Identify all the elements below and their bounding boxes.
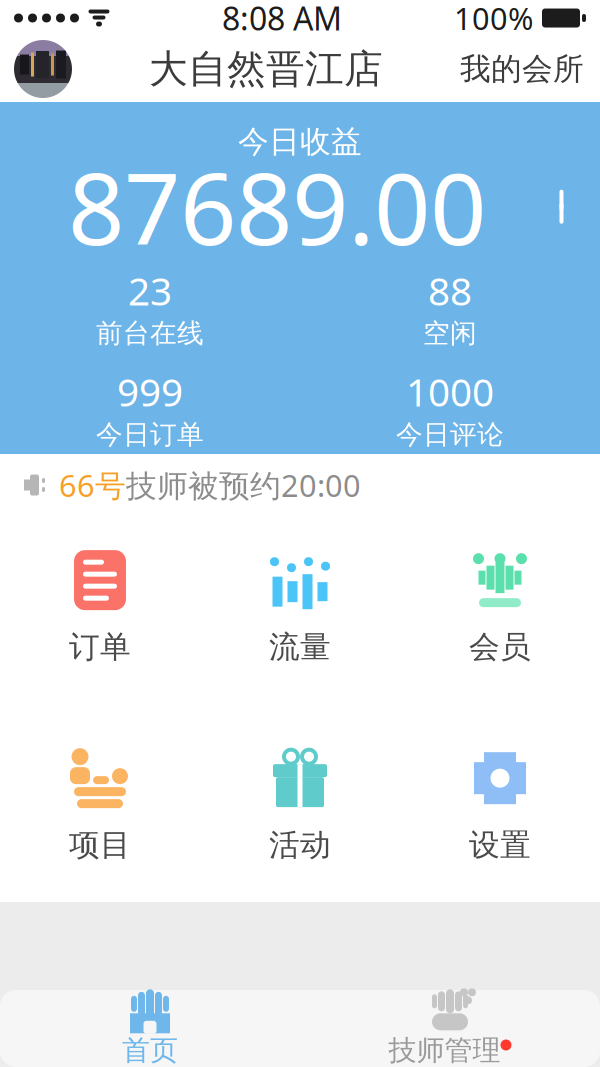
staticText: 空闲 xyxy=(423,317,477,350)
staticText: 大自然晋江店 xyxy=(149,45,383,93)
staticText: 999 xyxy=(117,366,183,417)
staticText: 88 xyxy=(428,265,472,316)
button[interactable]: 首页 xyxy=(0,990,300,1067)
button[interactable]: Today revenue detail xyxy=(0,161,600,253)
staticText: 流量 xyxy=(269,628,331,666)
button[interactable]: 活动 xyxy=(200,734,400,874)
button[interactable]: Store profile xyxy=(0,36,72,102)
staticText: 23 xyxy=(128,265,172,316)
staticText: 首页 xyxy=(122,1033,178,1067)
staticText: 订单 xyxy=(69,628,131,666)
staticText: 8:08 AM xyxy=(222,0,342,39)
staticText: 今日收益 xyxy=(238,123,362,161)
staticText: 66号 xyxy=(59,465,126,505)
button[interactable]: 订单 xyxy=(0,536,200,676)
staticText: 100% xyxy=(454,0,533,38)
staticText: 技师管理 xyxy=(388,1033,500,1067)
staticText: 活动 xyxy=(269,826,331,864)
staticText: 设置 xyxy=(469,826,531,864)
staticText: 87689.00 xyxy=(68,141,486,272)
staticText: 前台在线 xyxy=(96,317,204,350)
button[interactable]: 项目 xyxy=(0,734,200,874)
button[interactable]: 流量 xyxy=(200,536,400,676)
button[interactable]: 技师管理 xyxy=(300,990,600,1067)
button[interactable]: 会员 xyxy=(400,536,600,676)
staticText: 我的会所 xyxy=(460,50,584,88)
staticText: 1000 xyxy=(406,366,494,417)
staticText: 会员 xyxy=(469,628,531,666)
staticText: 项目 xyxy=(69,826,131,864)
staticText: 今日订单 xyxy=(96,418,204,451)
button[interactable]: Notice 66号技师被预约20:00 xyxy=(0,454,600,516)
button[interactable]: 我的会所 xyxy=(460,36,600,102)
button[interactable]: 设置 xyxy=(400,734,600,874)
staticText: 技师被预约20:00 xyxy=(126,465,361,505)
staticText: 今日评论 xyxy=(396,418,504,451)
